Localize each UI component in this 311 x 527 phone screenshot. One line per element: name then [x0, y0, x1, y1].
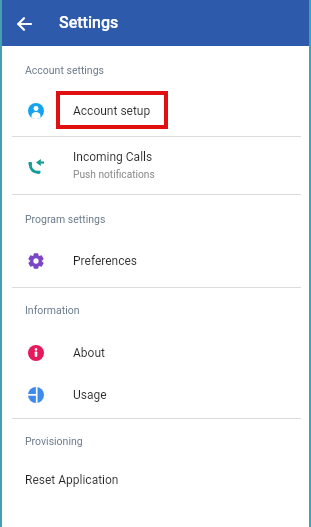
button[interactable]: Incoming Calls: [0, 137, 311, 194]
button[interactable]: Account setup: [0, 86, 311, 136]
button[interactable]: Preferences: [0, 234, 311, 287]
button[interactable]: About: [0, 335, 311, 371]
staticText: Information: [25, 304, 80, 316]
staticText: Account setup: [73, 104, 151, 118]
staticText: Reset Application: [25, 473, 119, 487]
button[interactable]: Usage: [0, 371, 311, 418]
button[interactable]: Reset Application: [0, 461, 311, 499]
staticText: Usage: [73, 388, 107, 402]
staticText: Settings: [59, 13, 119, 32]
staticText: Program settings: [25, 213, 106, 225]
staticText: Incoming Calls: [73, 150, 153, 164]
button[interactable]: Back: [17, 17, 31, 31]
staticText: Account settings: [25, 64, 104, 76]
staticText: About: [73, 346, 105, 360]
staticText: Provisioning: [25, 435, 83, 447]
staticText: Preferences: [73, 254, 138, 268]
staticText: Push notifications: [73, 169, 155, 181]
